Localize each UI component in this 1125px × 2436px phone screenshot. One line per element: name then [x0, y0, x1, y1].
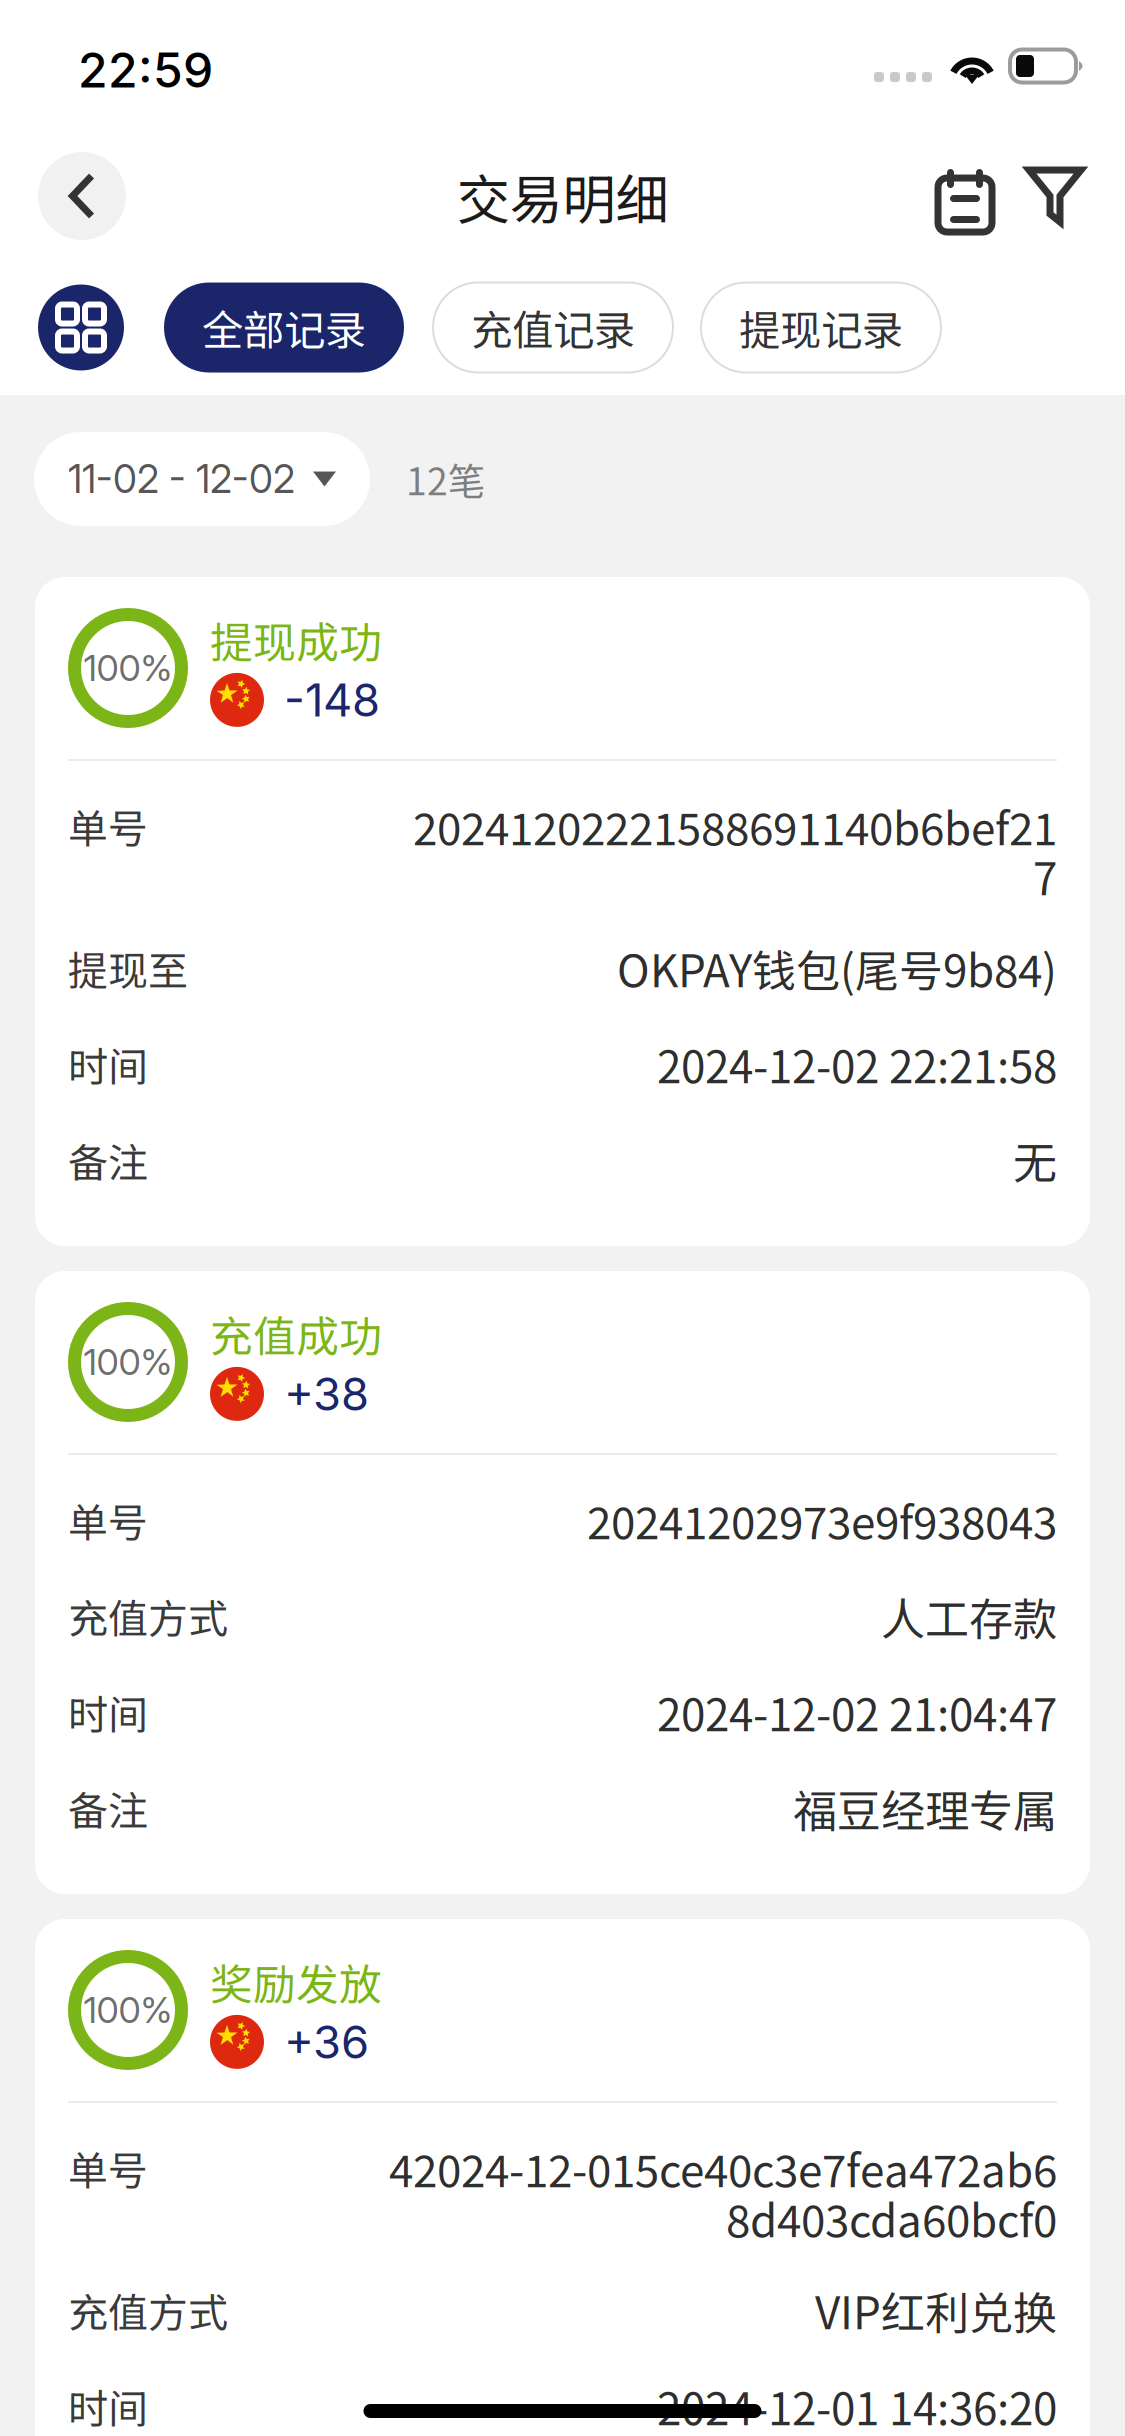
staticText: 备注 — [68, 1779, 148, 1837]
staticText: 7 — [1033, 844, 1057, 908]
staticText: 充值记录 — [471, 298, 635, 357]
staticText: 20241202221588691140b6bef21 — [413, 794, 1057, 858]
staticText: 100% — [83, 1340, 172, 1384]
staticText: 提现记录 — [739, 298, 903, 357]
staticText: 充值方式 — [68, 1587, 228, 1645]
staticText: 2024-12-01 14:36:20 — [657, 2374, 1057, 2436]
staticText: OKPAY钱包(尾号9b84) — [617, 936, 1057, 1000]
staticText: 全部记录 — [202, 298, 366, 357]
staticText: 8d403cda60bcf0 — [726, 2186, 1057, 2250]
staticText: VIP红利兑换 — [815, 2278, 1057, 2342]
staticText: 充值成功 — [210, 1303, 382, 1364]
staticText: 人工存款 — [881, 1584, 1057, 1648]
staticText: 100% — [83, 646, 172, 690]
staticText: 时间 — [68, 1035, 148, 1093]
button[interactable]: Back — [38, 152, 126, 240]
staticText: 20241202973e9f938043 — [587, 1488, 1057, 1552]
staticText: 提现至 — [68, 939, 188, 997]
staticText: 时间 — [68, 1683, 148, 1741]
staticText: 单号 — [68, 1491, 148, 1549]
staticText: 充值方式 — [68, 2281, 228, 2339]
button[interactable]: 全部记录 — [164, 282, 404, 372]
staticText: 100% — [83, 1988, 172, 2032]
staticText: 交易明细 — [456, 157, 668, 235]
staticText: 2024-12-02 22:21:58 — [657, 1032, 1057, 1096]
button[interactable]: 充值记录 — [433, 282, 673, 372]
staticText: 22:59 — [78, 41, 213, 99]
button[interactable]: Filter — [1025, 165, 1085, 227]
button[interactable]: 提现记录 — [701, 282, 941, 372]
staticText: 2024-12-02 21:04:47 — [657, 1680, 1057, 1744]
staticText: 42024-12-015ce40c3e7fea472ab6 — [389, 2136, 1057, 2200]
staticText: 无 — [1013, 1128, 1057, 1192]
staticText: 提现成功 — [210, 609, 382, 670]
button[interactable]: Categories — [38, 284, 124, 370]
button[interactable]: 11-02 - 12-02 — [34, 432, 370, 526]
staticText: +38 — [284, 1366, 369, 1421]
button[interactable]: Records — [935, 163, 995, 229]
staticText: 11-02 - 12-02 — [68, 456, 295, 502]
staticText: 备注 — [68, 1131, 148, 1189]
staticText: 福豆经理专属 — [793, 1776, 1057, 1840]
staticText: +36 — [284, 2014, 369, 2069]
staticText: 12笔 — [406, 452, 485, 506]
staticText: 时间 — [68, 2377, 148, 2435]
staticText: 单号 — [68, 2139, 148, 2197]
staticText: 单号 — [68, 797, 148, 855]
staticText: 奖励发放 — [210, 1951, 382, 2012]
staticText: -148 — [284, 672, 380, 727]
